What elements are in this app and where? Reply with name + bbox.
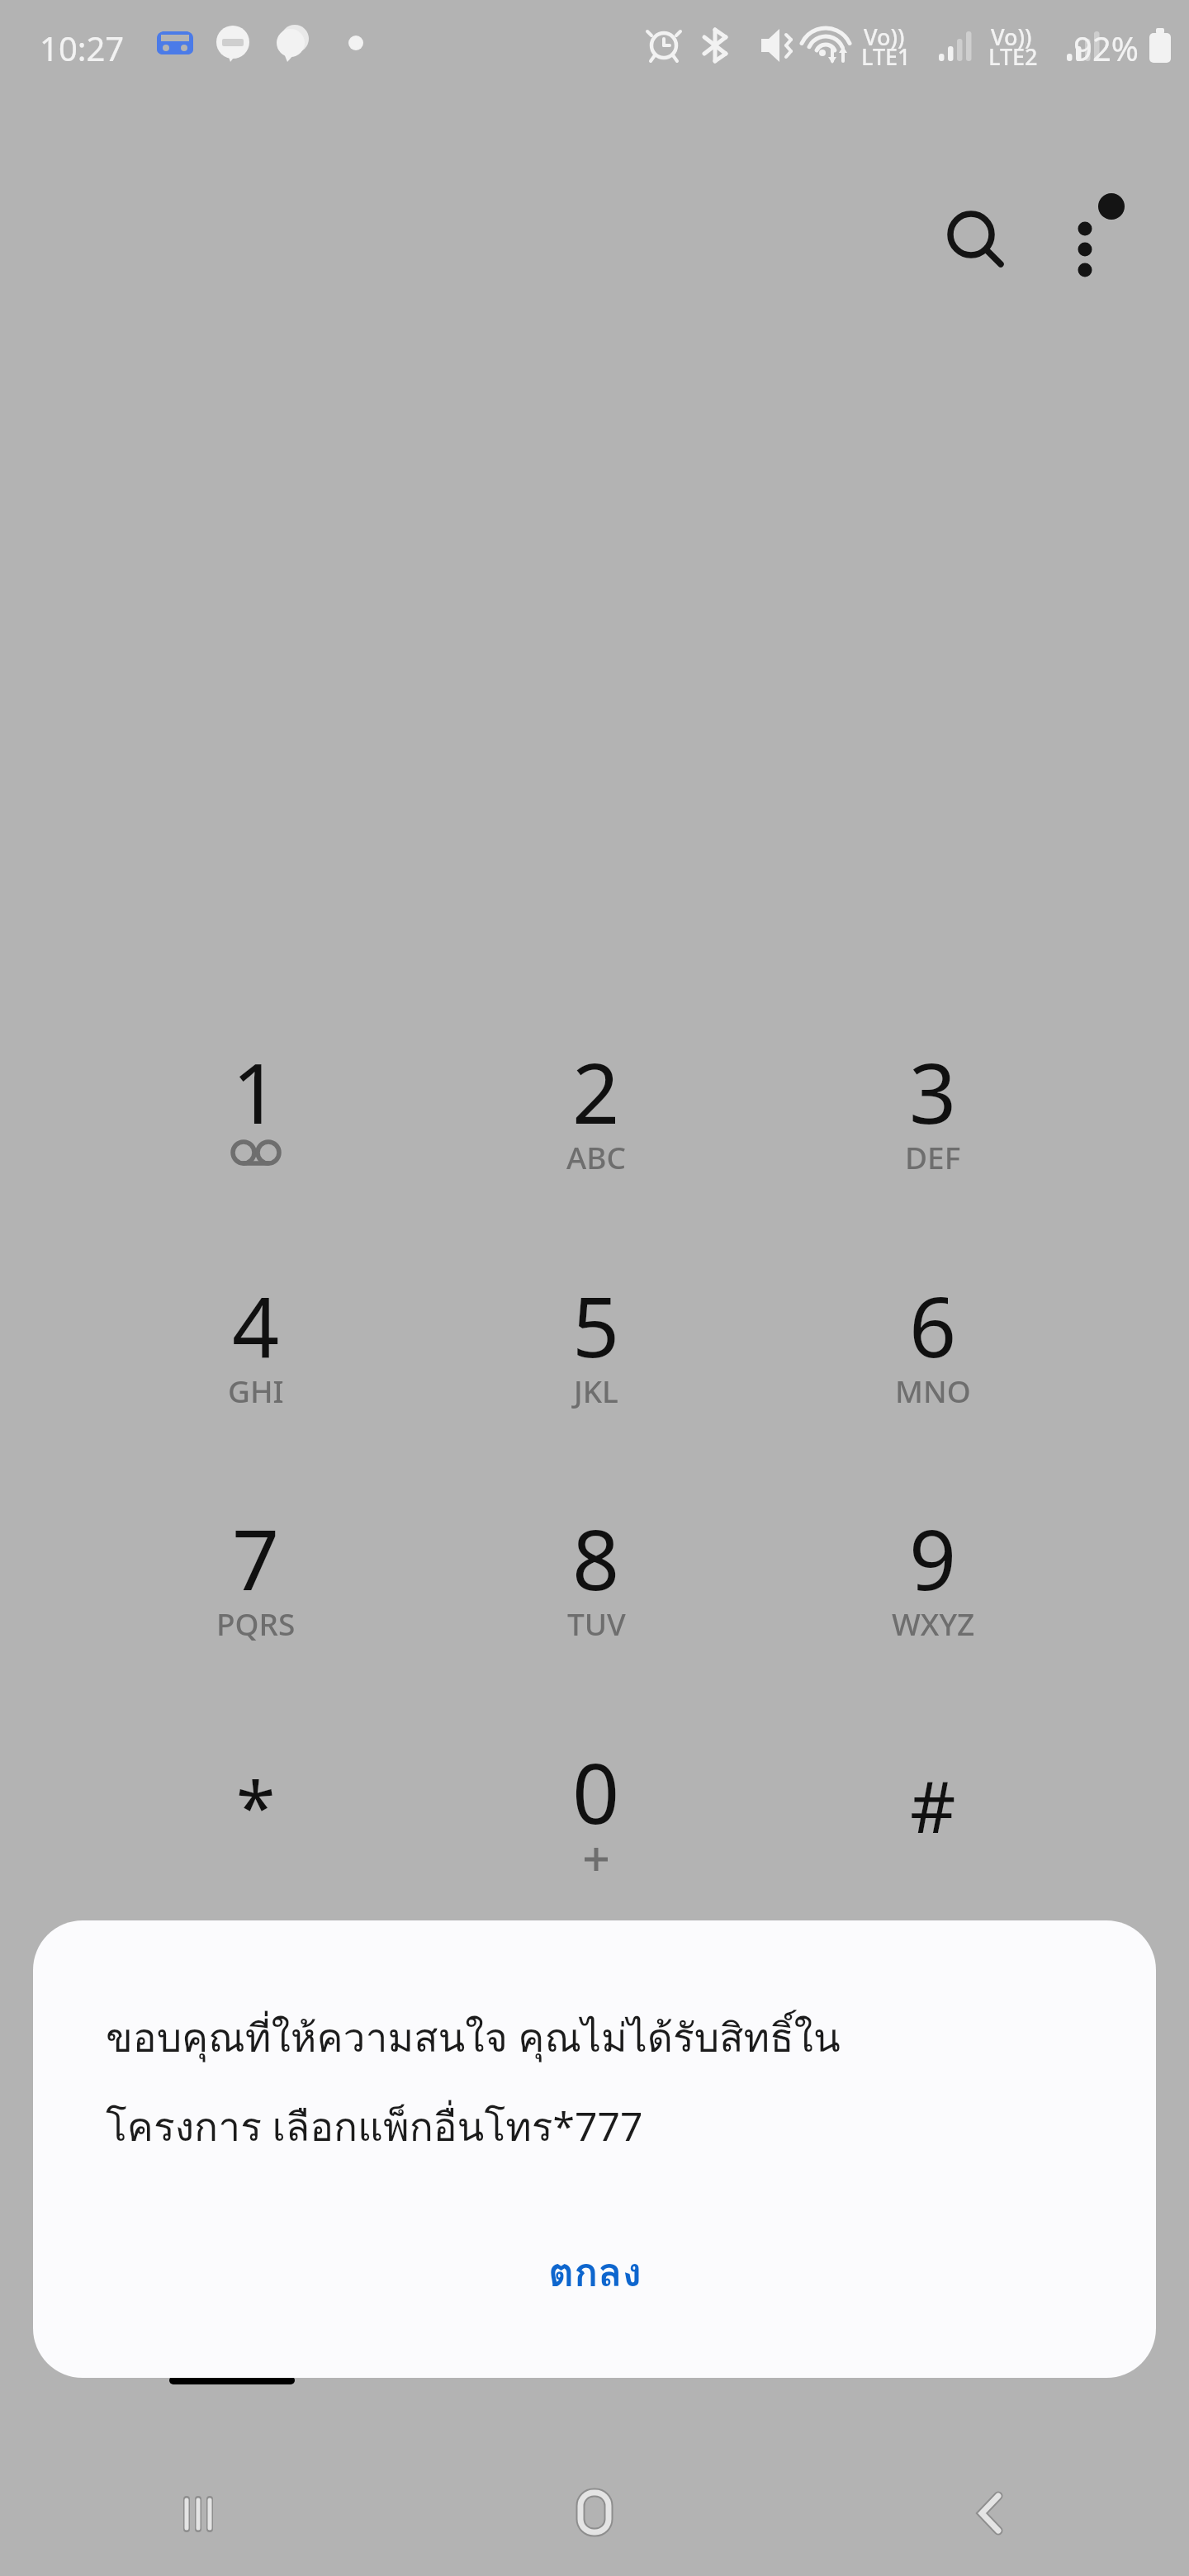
button[interactable]: #	[809, 1714, 1057, 1925]
button[interactable]: Home	[396, 2451, 793, 2576]
staticText: 92%	[1073, 26, 1139, 70]
staticText: 5	[572, 1269, 620, 1381]
staticText: DEF	[905, 1136, 961, 1177]
button[interactable]: 7	[132, 1480, 380, 1691]
staticText: 2	[572, 1035, 620, 1148]
staticText: *	[236, 1757, 276, 1854]
button[interactable]: Recent apps	[0, 2451, 396, 2576]
button[interactable]: 0	[472, 1714, 720, 1925]
staticText: ขอบคุณที่ให้ความสนใจ คุณไม่ได้รับสิทธิ์ใ…	[106, 2006, 841, 2069]
button[interactable]: Back	[793, 2451, 1189, 2576]
staticText: 9	[909, 1502, 957, 1614]
staticText: 6	[909, 1269, 957, 1381]
button[interactable]: 1	[132, 1014, 380, 1224]
button[interactable]: More options	[1037, 188, 1143, 294]
staticText: 3	[909, 1035, 957, 1148]
staticText: 8	[572, 1502, 620, 1614]
button[interactable]: 4	[132, 1248, 380, 1458]
staticText: 10:27	[40, 26, 125, 70]
staticText: Vo))	[864, 21, 905, 52]
staticText: โครงการ เลือกแพ็กอื่นโทร*777	[106, 2095, 643, 2158]
button[interactable]: 2	[472, 1014, 720, 1224]
staticText: PQRS	[216, 1603, 296, 1644]
staticText: ตกลง	[548, 2241, 642, 2304]
button[interactable]: 6	[809, 1248, 1057, 1458]
button[interactable]: Search	[925, 188, 1030, 294]
staticText: 0	[572, 1735, 620, 1848]
button[interactable]: 5	[472, 1248, 720, 1458]
staticText: Vo))	[991, 21, 1032, 52]
staticText: #	[910, 1757, 956, 1854]
button[interactable]: *	[132, 1714, 380, 1925]
staticText: WXYZ	[892, 1603, 975, 1644]
button[interactable]: 9	[809, 1480, 1057, 1691]
button[interactable]: ตกลง	[33, 2214, 1156, 2330]
button[interactable]: 8	[472, 1480, 720, 1691]
button[interactable]: 3	[809, 1014, 1057, 1224]
staticText: JKL	[574, 1370, 618, 1411]
staticText: LTE1	[861, 41, 911, 72]
staticText: 4	[232, 1269, 280, 1381]
staticText: LTE2	[988, 41, 1038, 72]
staticText: GHI	[228, 1370, 284, 1411]
staticText: MNO	[895, 1370, 971, 1411]
staticText: TUV	[567, 1603, 626, 1644]
staticText: 7	[232, 1502, 280, 1614]
staticText: ABC	[566, 1136, 626, 1177]
staticText: 1	[232, 1035, 280, 1148]
